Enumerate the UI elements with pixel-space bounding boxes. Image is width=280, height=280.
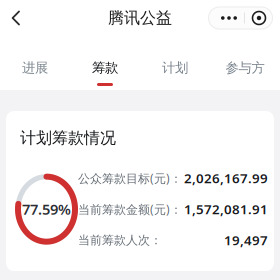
button[interactable]: 参与方 [210, 36, 280, 90]
staticText: 77.59% [22, 199, 71, 219]
staticText: 1,572,081.91 [184, 200, 268, 218]
staticText: 计划筹款情况 [20, 128, 116, 148]
button[interactable]: 进展 [0, 36, 70, 90]
button[interactable]: 计划 [140, 36, 210, 90]
staticText: 进展 [22, 60, 48, 76]
staticText: 2,026,167.99 [184, 169, 268, 187]
button[interactable]: 筹款 [70, 36, 140, 90]
button[interactable]: More [208, 6, 244, 29]
staticText: 19,497 [224, 231, 268, 249]
staticText: 公众筹款目标(元)： [78, 170, 182, 186]
staticText: 腾讯公益 [108, 8, 172, 28]
staticText: 当前筹款金额(元)： [78, 201, 182, 217]
button[interactable]: Back [0, 1, 32, 35]
button[interactable]: Close [245, 6, 273, 29]
staticText: 计划 [162, 60, 188, 76]
staticText: 筹款 [92, 60, 118, 76]
staticText: 参与方 [225, 60, 264, 76]
staticText: 当前筹款人次： [78, 233, 162, 247]
